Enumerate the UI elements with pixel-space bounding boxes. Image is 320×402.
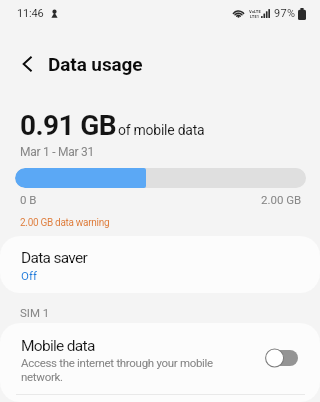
- staticText: Data usage: [48, 53, 143, 75]
- staticText: 0 B: [20, 193, 37, 206]
- button[interactable]: Mobile data toggle: [265, 348, 298, 368]
- staticText: VoLTE: [249, 9, 261, 14]
- staticText: Off: [21, 269, 37, 282]
- staticText: Access the internet through your mobile …: [21, 356, 221, 384]
- staticText: 97%: [274, 7, 296, 20]
- button[interactable]: Mobile data: [0, 323, 320, 402]
- staticText: 11:46: [17, 7, 44, 20]
- staticText: Mar 1 - Mar 31: [20, 145, 95, 159]
- staticText: 0.91 GB: [20, 109, 117, 142]
- staticText: LTE1: [250, 14, 260, 19]
- staticText: 2.00 GB data warning: [20, 217, 110, 229]
- staticText: SIM 1: [20, 306, 50, 319]
- staticText: Mobile data: [21, 337, 95, 355]
- staticText: 2.00 GB: [261, 193, 302, 206]
- button[interactable]: Navigate up: [0, 40, 48, 88]
- button[interactable]: Data saver: [0, 236, 320, 293]
- staticText: Data saver: [21, 249, 88, 267]
- staticText: of mobile data: [118, 122, 205, 138]
